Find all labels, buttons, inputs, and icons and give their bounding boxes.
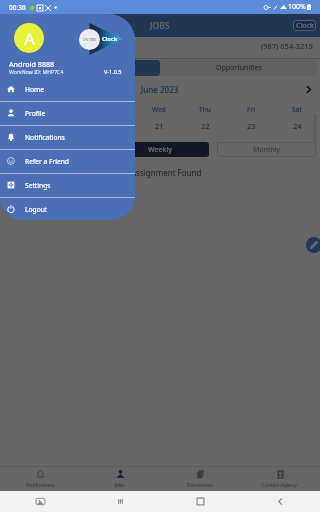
button[interactable]: 21 — [136, 120, 182, 132]
button[interactable]: Contact Agency — [240, 467, 320, 491]
staticText: A — [24, 27, 35, 50]
button[interactable]: Home — [160, 491, 240, 512]
button[interactable]: Settings — [0, 173, 135, 197]
button[interactable]: 20 — [90, 120, 136, 132]
button[interactable]: Back — [240, 491, 320, 512]
staticText: Clock — [102, 35, 118, 43]
button[interactable]: Open navigation menu — [8, 19, 21, 32]
staticText: Profile — [25, 109, 46, 118]
staticText: Sun — [17, 105, 29, 114]
button[interactable]: Tue — [90, 104, 136, 114]
staticText: Wed — [152, 105, 166, 114]
button[interactable]: Thu — [182, 104, 228, 114]
staticText: Monthly — [253, 145, 281, 155]
button[interactable]: 24 — [274, 120, 320, 132]
button[interactable]: Sat — [274, 104, 320, 114]
button[interactable]: Monthly — [217, 142, 316, 157]
button[interactable]: Jobs — [80, 467, 160, 491]
button[interactable]: 22 — [182, 120, 228, 132]
button[interactable]: Daily — [4, 142, 102, 157]
staticText: Notifications — [26, 482, 55, 489]
staticText: 18 — [18, 121, 27, 131]
staticText: WorkNow ID: MHP7C4 — [9, 68, 64, 75]
button[interactable]: Clock — [293, 20, 316, 31]
button[interactable]: Sun — [0, 104, 45, 114]
staticText: Daily — [45, 145, 62, 155]
staticText: 100% — [288, 2, 306, 12]
button[interactable]: Documents — [160, 467, 240, 491]
staticText: 21 — [155, 121, 164, 131]
staticText: Opportunities — [216, 63, 262, 73]
button[interactable]: Notifications — [0, 125, 135, 149]
button[interactable]: Previous month — [6, 84, 17, 95]
staticText: Clock — [296, 21, 314, 31]
staticText: Logout — [25, 205, 48, 214]
staticText: Sat — [292, 105, 302, 114]
button[interactable]: Refer a Friend — [0, 149, 135, 173]
staticText: JOBS — [150, 20, 170, 32]
staticText: Thu — [199, 105, 211, 114]
button[interactable]: Fri — [228, 104, 274, 114]
button[interactable]: Assignments — [3, 60, 160, 76]
staticText: Fri — [247, 105, 255, 114]
staticText: 23 — [247, 121, 256, 131]
button[interactable]: 19 — [45, 120, 90, 132]
button[interactable]: 18 — [0, 120, 45, 132]
staticText: June 2023 — [141, 84, 179, 95]
staticText: 22 — [201, 121, 210, 131]
button[interactable]: Next month — [303, 84, 314, 95]
staticText: 06:36 — [9, 3, 26, 12]
staticText: 20 — [109, 121, 118, 131]
staticText: Jobs — [115, 482, 125, 489]
button[interactable]: Weekly — [110, 142, 209, 157]
staticText: Home — [25, 85, 45, 94]
staticText: Settings — [25, 181, 51, 190]
button[interactable]: Opportunities — [160, 60, 317, 76]
button[interactable]: Recents — [80, 491, 160, 512]
staticText: Contact Agency — [262, 482, 298, 489]
staticText: V-1.0.5 — [104, 68, 122, 75]
button[interactable]: Profile — [0, 101, 135, 125]
staticText: Notifications — [25, 133, 65, 142]
button[interactable]: Wed — [136, 104, 182, 114]
staticText: Refer a Friend — [25, 157, 69, 166]
button[interactable]: 23 — [228, 120, 274, 132]
button[interactable]: Edit — [306, 237, 320, 253]
staticText: Weekly — [148, 145, 172, 155]
button[interactable]: Home — [0, 77, 135, 101]
button[interactable]: Screenshot — [0, 491, 80, 512]
button[interactable]: Logout — [0, 197, 135, 220]
staticText: 24 — [293, 121, 302, 131]
staticText: ON TIME — [83, 38, 97, 42]
staticText: (987) 654-3219 — [261, 41, 313, 51]
staticText: 19 — [63, 121, 72, 131]
staticText: Assignments — [60, 63, 104, 73]
staticText: No Assignment Found — [118, 167, 202, 178]
staticText: Documents — [187, 482, 213, 489]
button[interactable]: Notifications — [0, 467, 80, 491]
staticText: Android 8888 — [9, 59, 55, 69]
